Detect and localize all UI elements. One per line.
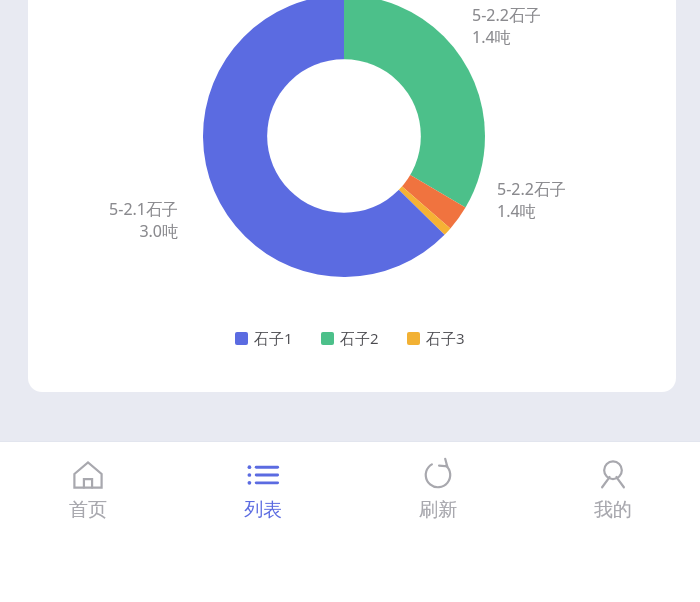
other: 刷新 — [421, 458, 455, 492]
staticText: 石子2 — [340, 328, 379, 348]
staticText: 刷新 — [419, 498, 457, 522]
staticText: 1.4吨 — [497, 200, 647, 222]
staticText: 3.0吨 — [28, 220, 178, 242]
button[interactable]: 首页 — [0, 442, 175, 522]
button[interactable]: 石子1 — [235, 328, 293, 348]
button[interactable]: 石子2 — [321, 328, 379, 348]
staticText: 5-2.1石子 — [28, 198, 178, 220]
staticText: 1.4吨 — [472, 26, 622, 48]
button[interactable]: 刷新 — [350, 442, 525, 522]
staticText: 石子1 — [254, 328, 293, 348]
staticText: 5-2.2石子 — [497, 178, 647, 200]
button[interactable]: 石子3 — [407, 328, 465, 348]
button[interactable]: 我的 — [525, 442, 700, 522]
staticText: 5-2.2石子 — [472, 4, 622, 26]
other: 列表 — [246, 458, 280, 492]
other: 我的 — [596, 458, 630, 492]
staticText: 列表 — [244, 498, 282, 522]
button[interactable]: 列表 — [175, 442, 350, 522]
staticText: 我的 — [594, 498, 632, 522]
staticText: 首页 — [69, 498, 107, 522]
other: 首页 — [71, 458, 105, 492]
staticText: 石子3 — [426, 328, 465, 348]
